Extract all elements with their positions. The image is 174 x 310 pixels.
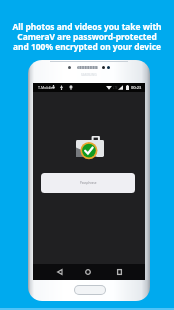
- button[interactable]: Passphrase: [41, 173, 135, 193]
- staticText: SAMSUNG: [81, 73, 97, 77]
- button[interactable]: Recents: [110, 264, 128, 280]
- staticText: 00:23: [131, 85, 142, 90]
- staticText: T-Mobile: [38, 85, 53, 90]
- button[interactable]: Back: [50, 264, 68, 280]
- staticText: Passphrase: [80, 181, 97, 185]
- staticText: LTE: [113, 86, 118, 90]
- button[interactable]: Home: [79, 264, 97, 280]
- button[interactable]: Home button: [75, 286, 105, 294]
- staticText: All photos and videos you take with Came…: [12, 21, 162, 52]
